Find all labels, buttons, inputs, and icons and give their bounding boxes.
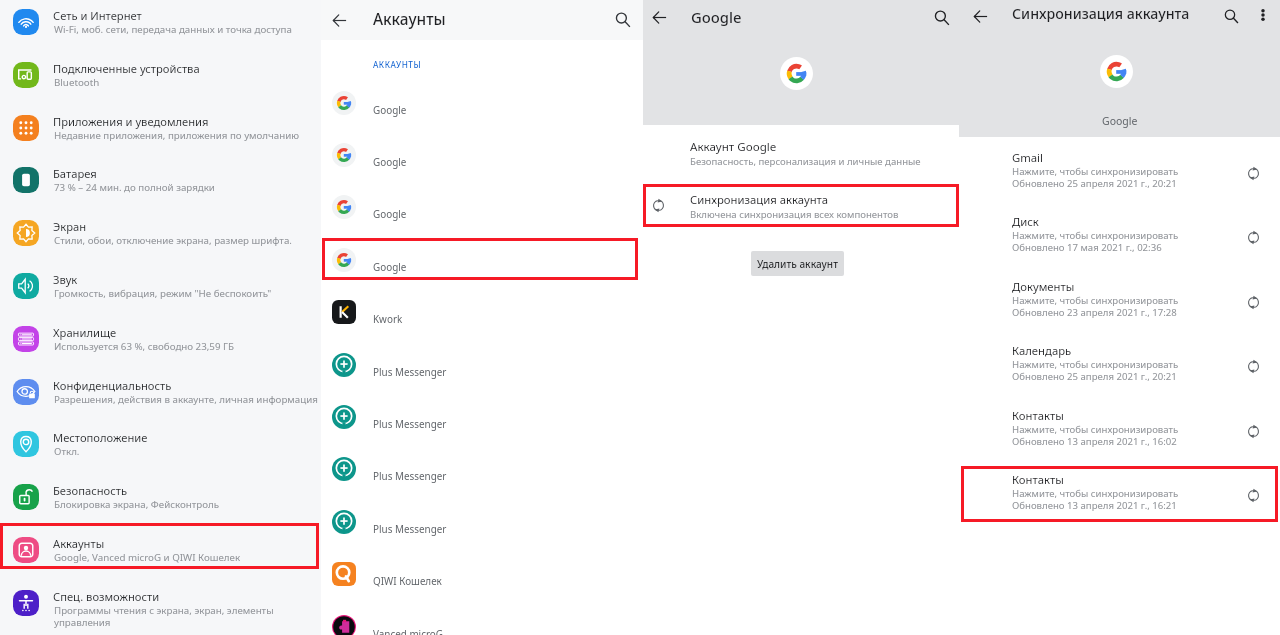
- staticText: Plus Messenger: [373, 365, 447, 378]
- button[interactable]: Поиск: [924, 0, 960, 36]
- button[interactable]: Батарея: [0, 158, 321, 211]
- staticText: Нажмите, чтобы синхронизировать: [1012, 487, 1179, 500]
- staticText: Синхронизация аккаунта: [690, 192, 829, 207]
- staticText: Синхронизация аккаунта: [1012, 4, 1190, 23]
- button[interactable]: Аккаунт Google: [643, 135, 959, 179]
- staticText: Местоположение: [53, 430, 148, 445]
- staticText: Программы чтения с экрана, экран, элемен…: [54, 604, 274, 629]
- staticText: АККАУНТЫ: [373, 59, 422, 70]
- button[interactable]: Диск: [959, 214, 1280, 270]
- staticText: Откл.: [54, 445, 80, 458]
- button[interactable]: Синхронизация аккаунта: [643, 185, 959, 227]
- staticText: Хранилище: [53, 325, 117, 340]
- staticText: Plus Messenger: [373, 469, 447, 482]
- button[interactable]: Календарь: [959, 343, 1280, 399]
- staticText: Нажмите, чтобы синхронизировать: [1012, 358, 1179, 371]
- button[interactable]: Ещё: [1249, 1, 1277, 29]
- staticText: Обновлено 13 апреля 2021 г., 16:02: [1012, 435, 1177, 448]
- staticText: Plus Messenger: [373, 522, 447, 535]
- staticText: Kwork: [373, 312, 403, 325]
- button[interactable]: Plus Messenger: [321, 497, 643, 549]
- staticText: Безопасность, персонализация и личные да…: [690, 155, 921, 168]
- button[interactable]: Приложения и уведомления: [0, 106, 321, 159]
- staticText: Аккаунты: [53, 536, 105, 551]
- staticText: Нажмите, чтобы синхронизировать: [1012, 229, 1179, 242]
- button[interactable]: Местоположение: [0, 422, 321, 475]
- button[interactable]: Vanced microG: [321, 602, 643, 635]
- button[interactable]: Звук: [0, 264, 321, 317]
- staticText: Gmail: [1012, 150, 1043, 165]
- button[interactable]: Назад: [964, 0, 996, 32]
- staticText: Нажмите, чтобы синхронизировать: [1012, 423, 1179, 436]
- staticText: Безопасность: [53, 483, 127, 498]
- button[interactable]: Google: [321, 235, 643, 287]
- button[interactable]: Gmail: [959, 150, 1280, 206]
- staticText: Блокировка экрана, Фейсконтроль: [54, 498, 220, 511]
- button[interactable]: Google: [321, 78, 643, 130]
- staticText: Обновлено 23 апреля 2021 г., 17:28: [1012, 306, 1177, 319]
- staticText: Обновлено 25 апреля 2021 г., 20:21: [1012, 177, 1177, 190]
- staticText: Google: [1102, 114, 1138, 128]
- button[interactable]: Поиск: [604, 1, 642, 39]
- staticText: 73 % – 24 мин. до полной зарядки: [54, 181, 215, 194]
- staticText: Разрешения, действия в аккаунте, личная …: [54, 393, 318, 406]
- button[interactable]: Google: [321, 130, 643, 182]
- button[interactable]: Контакты: [959, 408, 1280, 464]
- button[interactable]: Подключенные устройства: [0, 53, 321, 106]
- staticText: Удалить аккаунт: [757, 257, 838, 271]
- staticText: Включена синхронизация всех компонентов: [690, 208, 899, 221]
- button[interactable]: Экран: [0, 211, 321, 264]
- button[interactable]: Контакты: [959, 472, 1280, 528]
- staticText: Подключенные устройства: [53, 61, 200, 76]
- staticText: Стили, обои, отключение экрана, размер ш…: [54, 234, 292, 247]
- staticText: Google: [373, 260, 407, 273]
- staticText: Конфиденциальность: [53, 378, 172, 393]
- staticText: Контакты: [1012, 408, 1064, 423]
- staticText: Сеть и Интернет: [53, 8, 142, 23]
- staticText: Google: [373, 155, 407, 168]
- button[interactable]: Назад: [320, 1, 358, 39]
- staticText: Google, Vanced microG и QIWI Кошелек: [54, 551, 241, 564]
- staticText: Звук: [53, 272, 78, 287]
- staticText: Обновлено 13 апреля 2021 г., 16:21: [1012, 499, 1177, 512]
- button[interactable]: Поиск: [1215, 0, 1247, 32]
- staticText: Обновлено 17 мая 2021 г., 02:36: [1012, 241, 1162, 254]
- staticText: Vanced microG: [373, 627, 443, 635]
- staticText: Аккаунты: [373, 9, 446, 30]
- staticText: Контакты: [1012, 472, 1064, 487]
- staticText: Google: [373, 103, 407, 116]
- button[interactable]: Plus Messenger: [321, 340, 643, 392]
- staticText: Обновлено 25 апреля 2021 г., 20:21: [1012, 370, 1177, 383]
- button[interactable]: Сеть и Интернет: [0, 0, 321, 53]
- button[interactable]: Google: [321, 182, 643, 234]
- button[interactable]: Plus Messenger: [321, 392, 643, 444]
- button[interactable]: Plus Messenger: [321, 444, 643, 496]
- staticText: Google: [691, 7, 742, 27]
- button[interactable]: Kwork: [321, 287, 643, 339]
- button[interactable]: Аккаунты: [0, 528, 321, 581]
- staticText: Календарь: [1012, 343, 1072, 358]
- staticText: Bluetooth: [54, 76, 100, 89]
- staticText: Нажмите, чтобы синхронизировать: [1012, 294, 1179, 307]
- button[interactable]: Спец. возможности: [0, 581, 321, 634]
- staticText: QIWI Кошелек: [373, 574, 442, 587]
- button[interactable]: QIWI Кошелек: [321, 549, 643, 601]
- staticText: Нажмите, чтобы синхронизировать: [1012, 165, 1179, 178]
- staticText: Недавние приложения, приложения по умолч…: [54, 129, 300, 142]
- staticText: Аккаунт Google: [690, 139, 777, 155]
- button[interactable]: Конфиденциальность: [0, 370, 321, 423]
- staticText: Диск: [1012, 214, 1039, 229]
- button[interactable]: Хранилище: [0, 317, 321, 370]
- button[interactable]: Безопасность: [0, 475, 321, 528]
- staticText: Громкость, вибрация, режим "Не беспокоит…: [54, 287, 272, 300]
- button[interactable]: Удалить аккаунт: [751, 251, 844, 276]
- button[interactable]: Назад: [642, 0, 677, 35]
- staticText: Используется 63 %, свободно 23,59 ГБ: [54, 340, 235, 353]
- staticText: Wi-Fi, моб. сети, передача данных и точк…: [54, 23, 292, 36]
- button[interactable]: Документы: [959, 279, 1280, 335]
- staticText: Приложения и уведомления: [53, 114, 209, 129]
- staticText: Спец. возможности: [53, 589, 160, 604]
- staticText: Батарея: [53, 166, 97, 181]
- staticText: Plus Messenger: [373, 417, 447, 430]
- staticText: Экран: [53, 219, 87, 234]
